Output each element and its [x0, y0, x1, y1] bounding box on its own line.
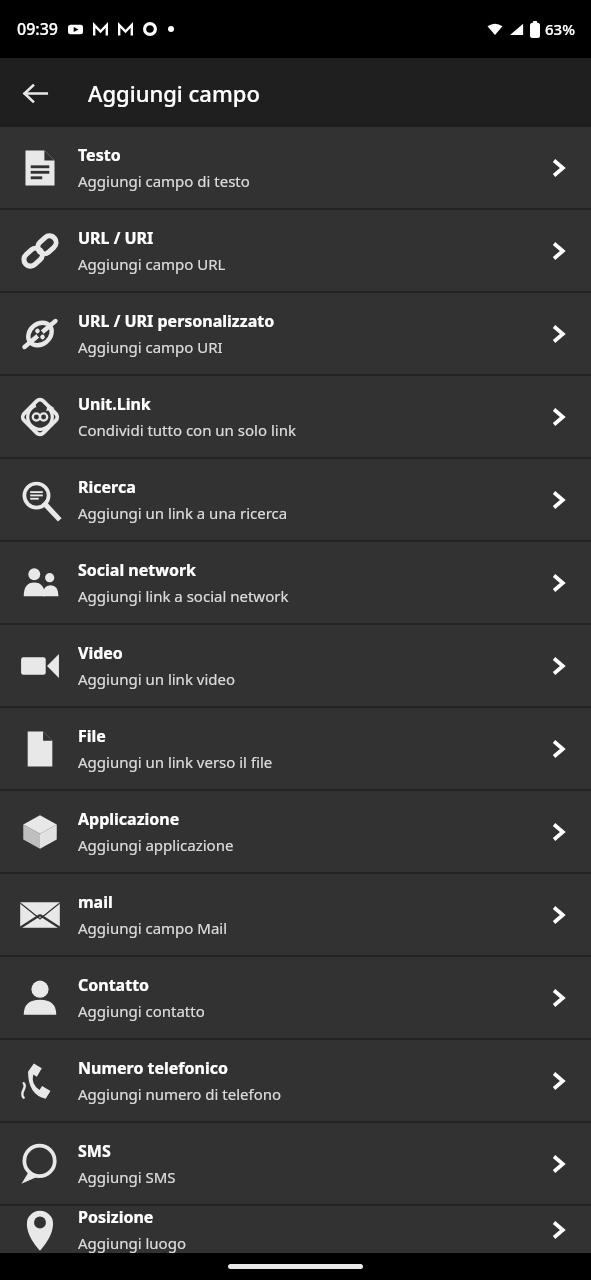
button[interactable]: Indietro	[11, 69, 59, 117]
staticText: Ricerca	[78, 476, 136, 498]
staticText: Aggiungi luogo	[78, 1233, 186, 1253]
button[interactable]: Contatto	[0, 957, 591, 1038]
staticText: Social network	[78, 559, 197, 581]
button[interactable]: URL / URI personalizzato	[0, 293, 591, 374]
staticText: Aggiungi campo	[88, 78, 260, 108]
staticText: Aggiungi un link verso il file	[78, 752, 273, 772]
button[interactable]: Unit.Link	[0, 376, 591, 457]
staticText: File	[78, 725, 106, 747]
staticText: Aggiungi campo di testo	[78, 171, 250, 191]
staticText: Applicazione	[78, 808, 180, 830]
staticText: URL / URI	[78, 227, 154, 249]
button[interactable]: SMS	[0, 1123, 591, 1204]
staticText: Aggiungi campo URL	[78, 254, 226, 274]
staticText: 63%	[545, 19, 575, 39]
staticText: SMS	[78, 1140, 111, 1162]
staticText: Aggiungi contatto	[78, 1001, 205, 1021]
staticText: Aggiungi numero di telefono	[78, 1084, 282, 1104]
staticText: Aggiungi applicazione	[78, 835, 234, 855]
staticText: URL / URI personalizzato	[78, 310, 275, 332]
button[interactable]: Testo	[0, 127, 591, 208]
button[interactable]: Applicazione	[0, 791, 591, 872]
staticText: Aggiungi un link a una ricerca	[78, 503, 288, 523]
button[interactable]: Video	[0, 625, 591, 706]
button[interactable]: Social network	[0, 542, 591, 623]
staticText: Aggiungi link a social network	[78, 586, 289, 606]
button[interactable]: Posizione	[0, 1206, 591, 1253]
staticText: Aggiungi campo Mail	[78, 918, 228, 938]
staticText: Contatto	[78, 974, 150, 996]
button[interactable]: URL / URI	[0, 210, 591, 291]
button[interactable]: Ricerca	[0, 459, 591, 540]
staticText: Aggiungi SMS	[78, 1167, 176, 1187]
staticText: mail	[78, 891, 113, 913]
staticText: Unit.Link	[78, 393, 151, 415]
staticText: Condividi tutto con un solo link	[78, 420, 296, 440]
staticText: Aggiungi un link video	[78, 669, 236, 689]
staticText: Aggiungi campo URI	[78, 337, 223, 357]
staticText: Testo	[78, 144, 121, 166]
button[interactable]: Numero telefonico	[0, 1040, 591, 1121]
staticText: 09:39	[17, 18, 58, 40]
button[interactable]: File	[0, 708, 591, 789]
staticText: Posizione	[78, 1206, 154, 1228]
button[interactable]: mail	[0, 874, 591, 955]
staticText: Numero telefonico	[78, 1057, 229, 1079]
staticText: Video	[78, 642, 123, 664]
